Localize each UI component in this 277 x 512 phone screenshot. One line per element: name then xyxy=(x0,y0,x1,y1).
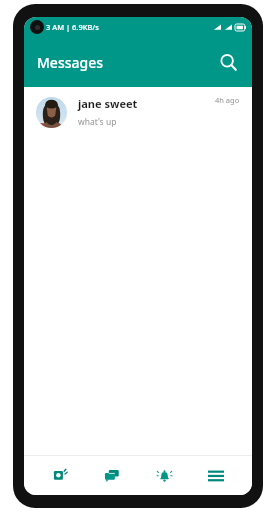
button[interactable]: Notifications xyxy=(142,456,186,494)
button[interactable]: Messages xyxy=(90,456,134,494)
staticText: Messages xyxy=(37,53,104,72)
button[interactable]: jane sweet xyxy=(24,87,252,137)
staticText: 3 AM | 6.9KB/s xyxy=(46,22,99,32)
button[interactable]: Camera xyxy=(38,456,82,494)
button[interactable]: Menu xyxy=(194,456,238,494)
staticText: jane sweet xyxy=(78,96,138,111)
button[interactable]: Search xyxy=(212,46,244,78)
staticText: what's up xyxy=(78,116,117,128)
staticText: 4h ago xyxy=(215,95,240,105)
